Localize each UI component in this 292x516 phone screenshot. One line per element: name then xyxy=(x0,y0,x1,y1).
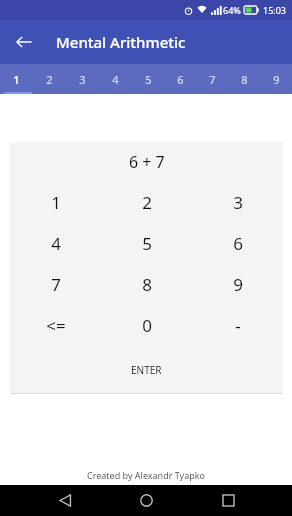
button[interactable]: 6 xyxy=(192,223,283,264)
button[interactable]: 2 xyxy=(33,64,66,94)
staticText: 9 xyxy=(233,273,243,296)
button[interactable]: 8 xyxy=(228,64,260,94)
button[interactable]: 1 xyxy=(10,182,101,223)
button[interactable]: 3 xyxy=(66,64,99,94)
staticText: 5 xyxy=(142,232,152,255)
button[interactable]: Back xyxy=(8,26,40,58)
button[interactable]: 7 xyxy=(196,64,228,94)
staticText: 8 xyxy=(142,273,152,296)
staticText: 64% xyxy=(223,4,241,16)
button[interactable]: 4 xyxy=(99,64,132,94)
button[interactable]: - xyxy=(192,305,283,346)
staticText: 3 xyxy=(233,191,243,214)
button[interactable]: 1 xyxy=(0,64,33,94)
staticText: 7 xyxy=(209,72,216,87)
staticText: ENTER xyxy=(131,363,162,377)
staticText: 4 xyxy=(51,232,61,255)
button[interactable]: 0 xyxy=(101,305,192,346)
button[interactable]: 7 xyxy=(10,264,101,305)
button[interactable]: 5 xyxy=(101,223,192,264)
staticText: Created by Alexandr Tyapko xyxy=(87,469,206,481)
button[interactable]: 2 xyxy=(101,182,192,223)
staticText: Mental Arithmetic xyxy=(56,32,186,52)
staticText: 6 xyxy=(177,72,184,87)
staticText: <= xyxy=(46,314,66,337)
button[interactable]: 8 xyxy=(101,264,192,305)
button[interactable]: Back xyxy=(48,485,82,516)
button[interactable]: 9 xyxy=(260,64,292,94)
staticText: 1 xyxy=(13,72,20,87)
staticText: 5 xyxy=(145,72,152,87)
staticText: - xyxy=(235,314,241,337)
button[interactable]: 6 xyxy=(164,64,196,94)
button[interactable]: ENTER xyxy=(10,346,283,393)
staticText: 6 + 7 xyxy=(129,151,165,173)
staticText: 9 xyxy=(273,72,280,87)
staticText: 4 xyxy=(112,72,119,87)
staticText: 6 xyxy=(233,232,243,255)
staticText: 3 xyxy=(79,72,86,87)
staticText: 2 xyxy=(142,191,152,214)
button[interactable]: 5 xyxy=(132,64,164,94)
staticText: 2 xyxy=(46,72,53,87)
button[interactable]: 3 xyxy=(192,182,283,223)
button[interactable]: Recent apps xyxy=(211,485,245,516)
button[interactable]: 4 xyxy=(10,223,101,264)
staticText: 1 xyxy=(51,191,61,214)
button[interactable]: <= xyxy=(10,305,101,346)
staticText: 0 xyxy=(142,314,152,337)
staticText: 8 xyxy=(241,72,248,87)
staticText: 15:03 xyxy=(263,4,287,16)
staticText: 7 xyxy=(51,273,61,296)
button[interactable]: 9 xyxy=(192,264,283,305)
button[interactable]: Home xyxy=(129,485,163,516)
